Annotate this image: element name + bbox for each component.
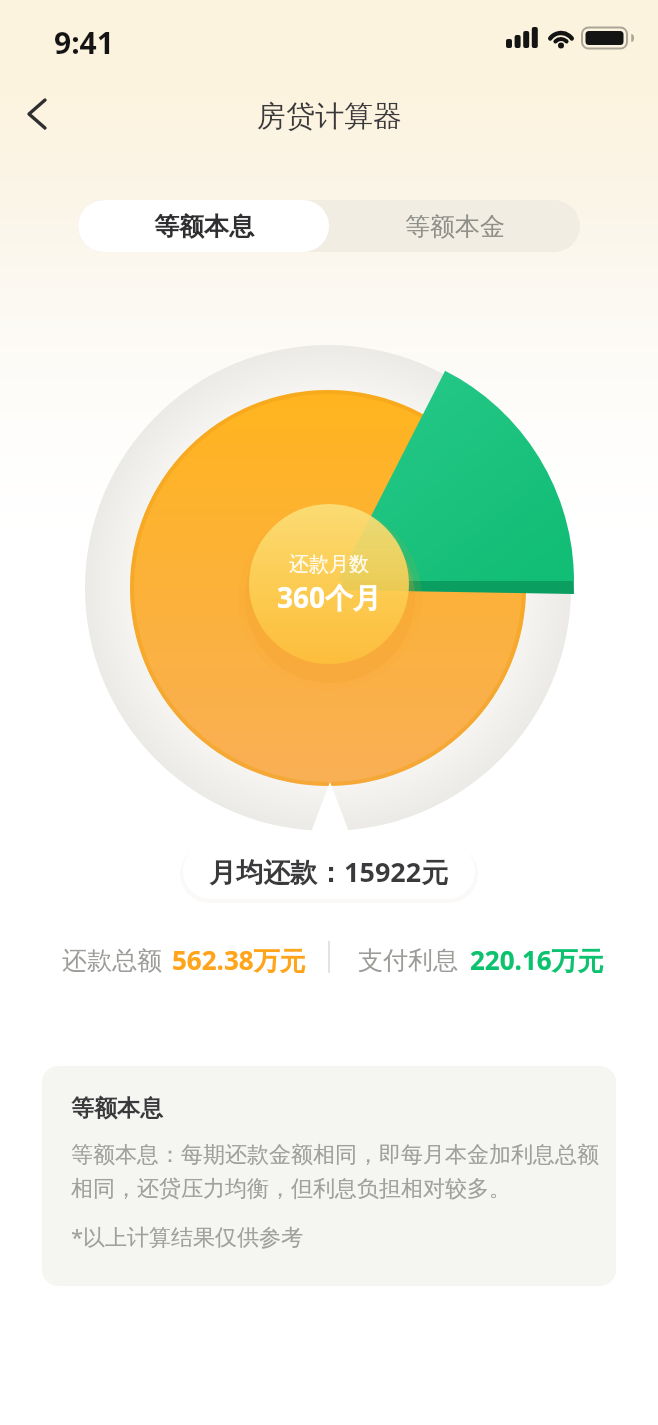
staticText: 等额本息: [71, 1094, 163, 1123]
staticText: 562.38万元: [172, 942, 306, 978]
staticText: 支付利息: [358, 945, 458, 976]
button[interactable]: 等额本息: [78, 200, 329, 252]
staticText: 等额本金: [405, 211, 505, 242]
staticText: 房贷计算器: [257, 98, 402, 135]
staticText: 月均还款：15922元: [209, 853, 449, 890]
button[interactable]: 等额本金: [329, 200, 580, 252]
staticText: 220.16万元: [470, 942, 604, 978]
staticText: 9:41: [54, 22, 114, 63]
staticText: 等额本息: [154, 211, 254, 242]
staticText: 还款月数: [289, 552, 369, 577]
button[interactable]: 月均还款：15922元: [183, 843, 475, 899]
staticText: *以上计算结果仅供参考: [71, 1221, 304, 1251]
staticText: 360个月: [277, 578, 382, 616]
staticText: 还款总额: [62, 945, 162, 976]
staticText: 等额本息：每期还款金额相同，即每月本金加利息总额 相同，还贷压力均衡，但利息负担…: [71, 1141, 599, 1202]
button[interactable]: [18, 94, 62, 138]
